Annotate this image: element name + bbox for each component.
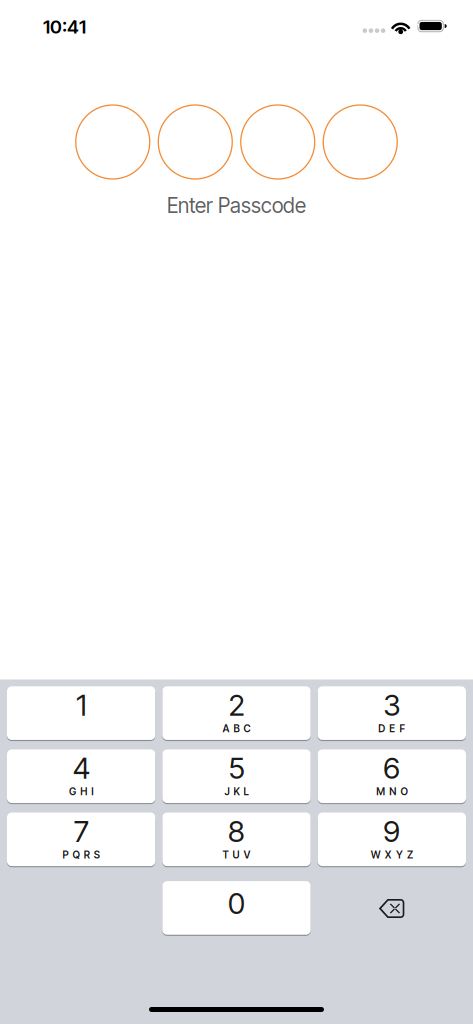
button[interactable]: 3 [318, 687, 466, 740]
button[interactable]: 1 [7, 687, 155, 740]
staticText: 6 [383, 750, 400, 786]
staticText: 4 [73, 750, 90, 786]
staticText: K [233, 785, 239, 798]
staticText: 3 [383, 687, 400, 723]
staticText: F [399, 722, 405, 735]
staticText: 2 [228, 687, 244, 723]
staticText: H [80, 785, 87, 798]
staticText: 8 [228, 814, 245, 849]
staticText: 1 [76, 687, 86, 723]
button[interactable]: 2 [162, 687, 311, 740]
staticText: B [233, 722, 239, 735]
staticText: O [400, 785, 407, 798]
staticText: 9 [383, 814, 400, 849]
staticText: L [244, 785, 249, 798]
staticText: 0 [228, 886, 245, 921]
button[interactable]: 9 [318, 813, 466, 867]
staticText: P [62, 849, 68, 861]
staticText: E [389, 722, 395, 735]
button[interactable]: 0 [162, 882, 311, 935]
button[interactable]: 5 [162, 750, 311, 804]
staticText: 5 [228, 750, 244, 786]
button[interactable]: 8 [162, 813, 311, 867]
button[interactable]: 6 [318, 750, 466, 804]
button[interactable]: 4 [7, 750, 155, 804]
staticText: Z [407, 849, 413, 861]
staticText: C [244, 722, 251, 735]
staticText: V [244, 849, 251, 861]
staticText: M [376, 785, 385, 798]
staticText: 7 [74, 814, 89, 849]
staticText: R [84, 849, 90, 861]
button[interactable]: Delete [318, 882, 466, 935]
staticText: X [385, 849, 392, 861]
staticText: I [91, 785, 93, 798]
staticText: S [94, 849, 100, 861]
staticText: J [224, 785, 229, 798]
staticText: U [232, 849, 239, 861]
staticText: G [69, 785, 76, 798]
staticText: Y [396, 849, 403, 861]
staticText: W [371, 849, 381, 861]
staticText: N [389, 785, 396, 798]
staticText: D [378, 722, 385, 735]
staticText: 10:41 [43, 15, 86, 38]
staticText: T [222, 849, 228, 861]
button[interactable]: 7 [7, 813, 155, 867]
staticText: A [222, 722, 229, 735]
staticText: Enter Passcode [167, 193, 306, 218]
staticText: Q [73, 849, 80, 861]
